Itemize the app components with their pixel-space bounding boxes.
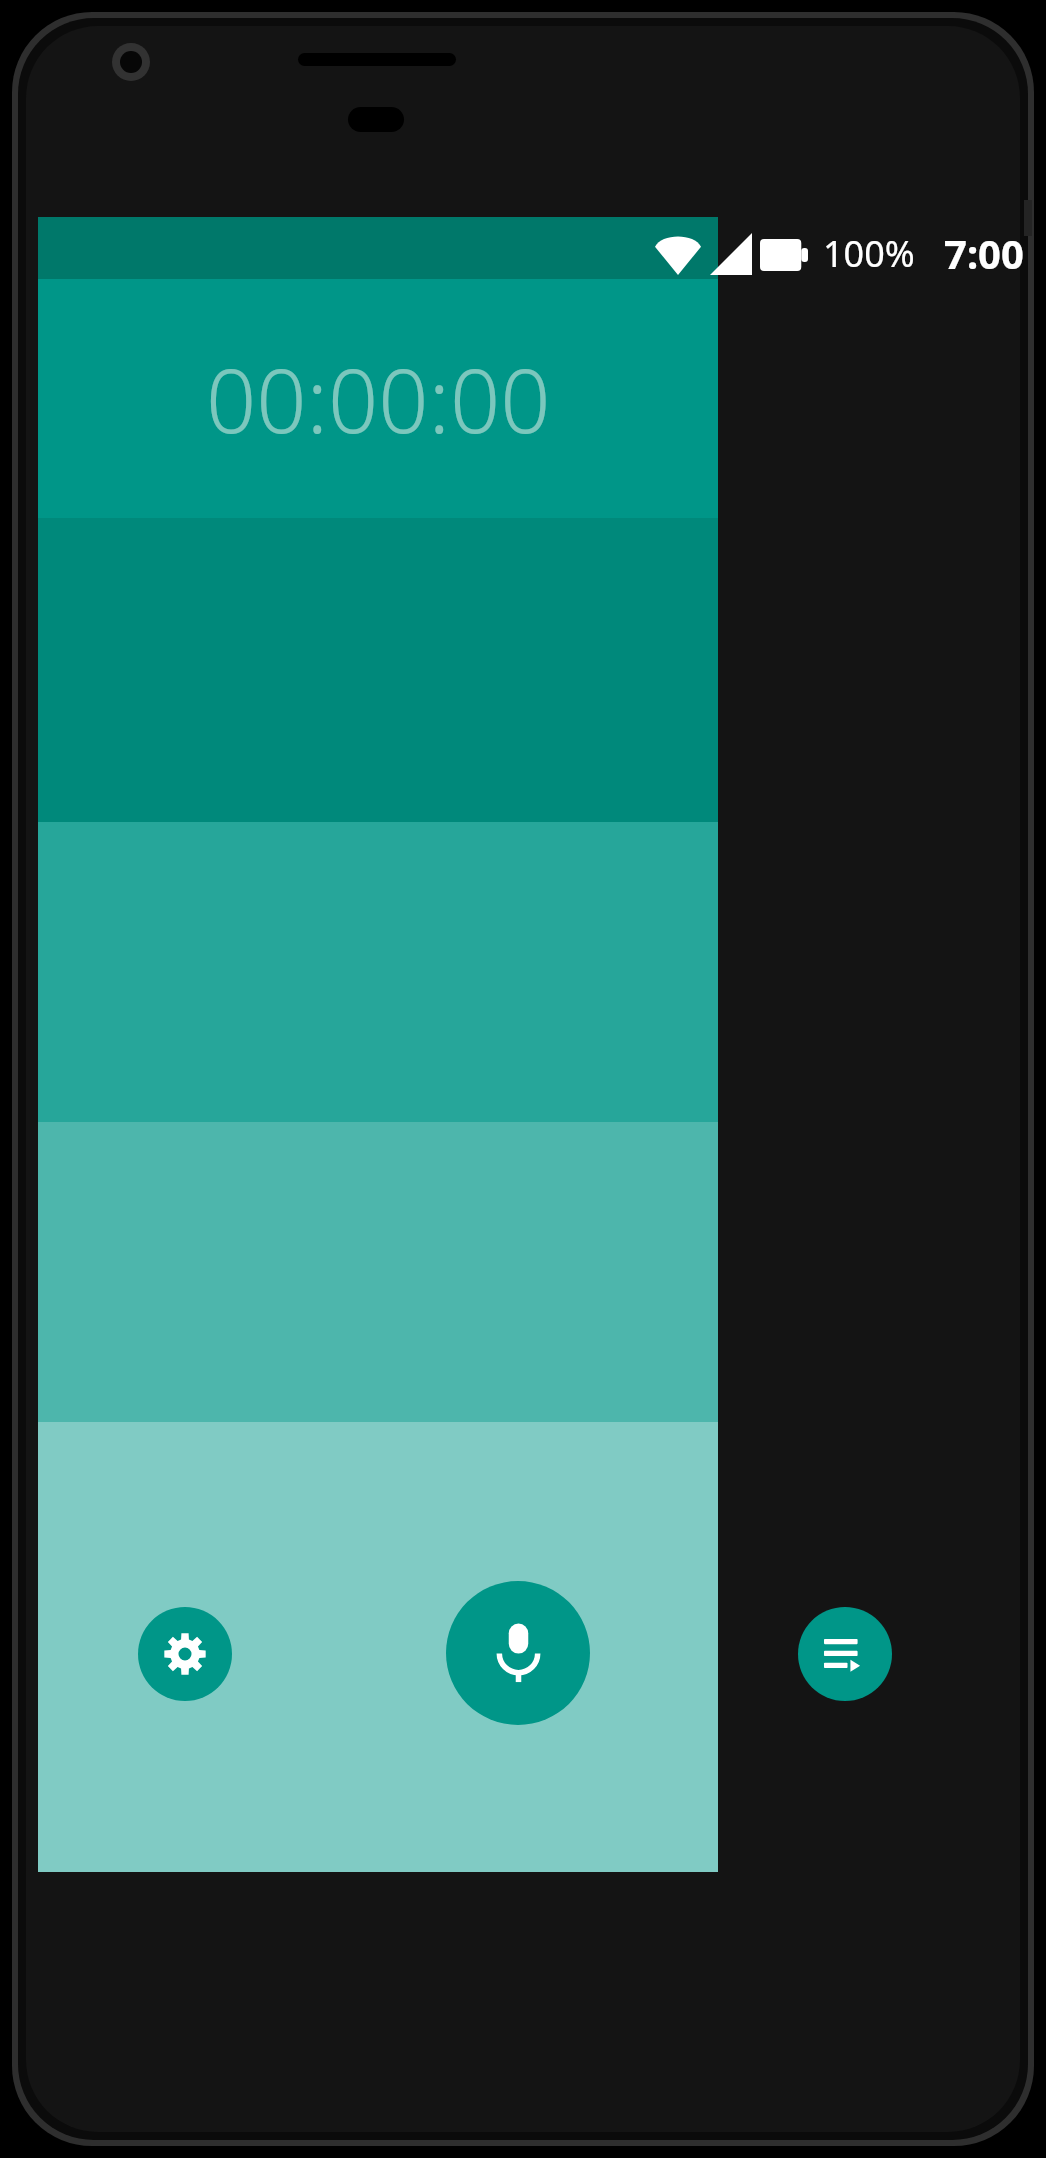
staticText: 100% [823, 229, 915, 278]
button[interactable]: Record [446, 1581, 590, 1725]
button[interactable]: Settings [138, 1607, 232, 1701]
staticText: 00:00:00 [206, 339, 551, 459]
button[interactable]: Recordings list [798, 1607, 892, 1701]
staticText: 7:00 [944, 226, 1024, 280]
